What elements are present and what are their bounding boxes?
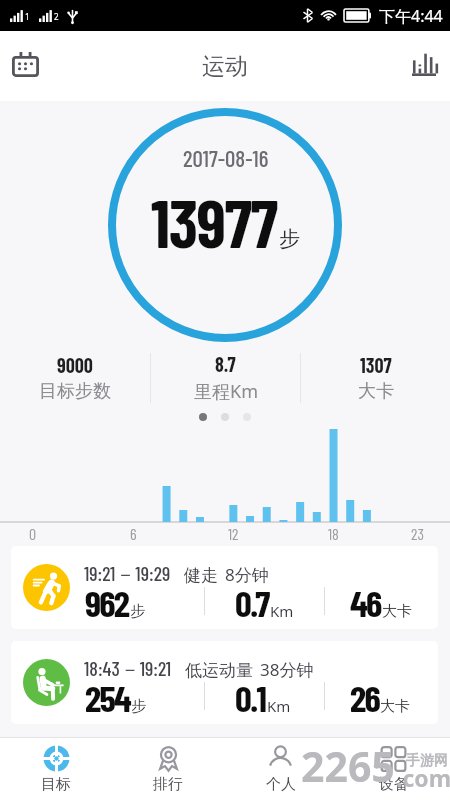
staticText: 18 <box>328 524 339 543</box>
staticText: 12 <box>228 524 239 543</box>
staticText: 2265 <box>301 738 395 794</box>
staticText: 9000 <box>57 353 93 377</box>
staticText: .com <box>396 762 450 793</box>
staticText: 6 <box>130 524 137 543</box>
staticText: 大卡 <box>358 380 394 403</box>
staticText: 0 <box>29 524 37 543</box>
staticText: 18:43－19:21 <box>84 656 172 682</box>
staticText: 23 <box>411 524 424 543</box>
button[interactable]: Statistics <box>400 31 450 101</box>
staticText: 46 <box>350 580 381 624</box>
staticText: 大卡 <box>380 697 410 716</box>
button[interactable]: 设备 <box>337 738 450 800</box>
staticText: 步 <box>279 226 300 252</box>
staticText: 步 <box>131 697 146 716</box>
staticText: 设备 <box>379 775 409 794</box>
button[interactable]: 19:21－19:29 <box>11 546 438 629</box>
staticText: 254 <box>85 675 130 719</box>
button[interactable]: 18:43－19:21 <box>11 641 438 724</box>
staticText: 目标步数 <box>39 380 111 403</box>
staticText: 排行 <box>153 775 183 794</box>
staticText: 健走 <box>184 565 218 586</box>
staticText: 0.1 <box>235 675 266 719</box>
button[interactable]: 1307 <box>301 347 450 409</box>
staticText: 运动 <box>202 52 248 81</box>
staticText: 8.7 <box>215 352 236 376</box>
staticText: 8分钟 <box>225 563 269 586</box>
staticText: Km <box>270 601 294 621</box>
button[interactable]: 9000 <box>0 347 150 409</box>
staticText: Km <box>267 696 291 716</box>
button[interactable]: 个人 <box>224 738 337 800</box>
staticText: 步 <box>130 602 145 621</box>
button[interactable]: Calendar <box>0 31 50 101</box>
staticText: 38分钟 <box>260 658 314 681</box>
staticText: 962 <box>85 580 129 624</box>
staticText: 1307 <box>360 353 392 377</box>
staticText: 个人 <box>266 775 296 794</box>
button[interactable]: 8.7 <box>151 347 300 409</box>
staticText: 0.7 <box>235 580 269 624</box>
staticText: 13977 <box>151 181 277 261</box>
staticText: 下午4:44 <box>379 5 443 27</box>
staticText: 1 <box>25 11 30 22</box>
staticText: 大卡 <box>382 602 412 621</box>
staticText: 目标 <box>41 775 71 794</box>
staticText: 2017-08-16 <box>183 144 269 172</box>
button[interactable]: 排行 <box>112 738 224 800</box>
staticText: 2 <box>54 11 59 22</box>
staticText: 低运动量 <box>185 660 253 681</box>
staticText: 里程Km <box>194 379 258 404</box>
staticText: 26 <box>350 675 379 719</box>
button[interactable]: 目标 <box>0 738 112 800</box>
staticText: 19:21－19:29 <box>84 561 171 587</box>
staticText: 手游网 <box>406 752 448 770</box>
